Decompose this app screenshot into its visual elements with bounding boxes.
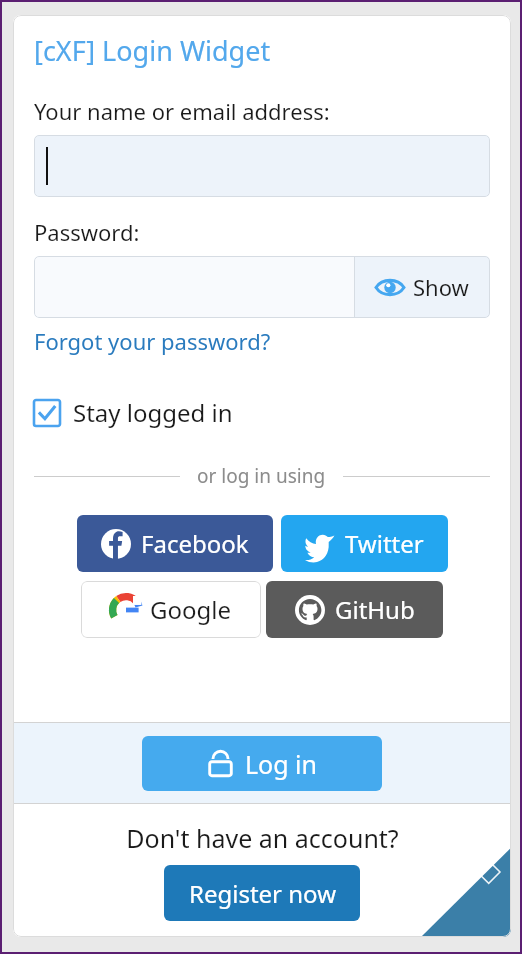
staticText: Facebook <box>141 527 249 560</box>
staticText: Twitter <box>345 527 424 560</box>
button[interactable]: GitHub <box>266 581 443 638</box>
button[interactable]: Forgot your password? <box>34 326 271 356</box>
staticText: Forgot your password? <box>34 326 271 356</box>
button[interactable]: Google <box>81 581 261 638</box>
button[interactable]: Log in <box>142 736 382 791</box>
staticText: Stay logged in <box>73 396 233 429</box>
button[interactable] <box>34 135 490 197</box>
staticText: Register now <box>189 877 336 910</box>
staticText: Your name or email address: <box>34 96 330 126</box>
staticText: Password: <box>34 217 140 247</box>
other: Stay logged in checkbox <box>34 400 60 426</box>
button[interactable]: Stay logged in checkbox <box>34 396 233 429</box>
button[interactable]: Show password <box>355 256 490 318</box>
staticText: [cXF] Login Widget <box>34 32 271 69</box>
staticText: Don't have an account? <box>126 821 399 855</box>
staticText: Show <box>413 272 469 302</box>
staticText: Log in <box>245 747 318 781</box>
button[interactable] <box>34 256 354 318</box>
button[interactable]: Twitter <box>281 515 448 572</box>
button[interactable]: Facebook <box>77 515 273 572</box>
button[interactable]: Register now <box>164 865 360 921</box>
other: xenArabia <box>411 842 511 937</box>
other: Show password <box>376 278 404 297</box>
staticText: Google <box>150 593 231 626</box>
staticText: or log in using <box>197 463 326 489</box>
staticText: GitHub <box>335 593 415 626</box>
